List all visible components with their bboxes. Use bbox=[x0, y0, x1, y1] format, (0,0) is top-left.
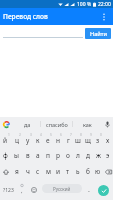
button[interactable]: ж bbox=[93, 147, 103, 163]
staticText: д bbox=[86, 151, 90, 160]
staticText: н bbox=[56, 136, 60, 145]
staticText: е bbox=[46, 136, 50, 145]
staticText: 8 bbox=[80, 133, 82, 137]
button[interactable]: Enter bbox=[94, 180, 113, 200]
staticText: , bbox=[21, 187, 23, 195]
button[interactable]: и bbox=[53, 163, 63, 180]
staticText: э bbox=[106, 151, 110, 160]
button[interactable]: Русский bbox=[42, 184, 82, 193]
staticText: 1 bbox=[8, 133, 10, 137]
button[interactable]: ?123 bbox=[0, 180, 17, 200]
staticText: т bbox=[66, 167, 70, 176]
staticText: г bbox=[67, 136, 70, 145]
staticText: ж bbox=[96, 151, 101, 160]
button[interactable]: б bbox=[83, 163, 93, 180]
staticText: Найти bbox=[90, 30, 107, 37]
button[interactable]: Shift bbox=[0, 163, 11, 180]
button[interactable]: Google search bbox=[0, 117, 13, 131]
staticText: в bbox=[26, 151, 30, 160]
button[interactable]: ь bbox=[73, 163, 83, 180]
button[interactable]: ю bbox=[93, 163, 103, 180]
button[interactable]: More options bbox=[95, 8, 112, 25]
button[interactable]: д bbox=[83, 147, 93, 163]
button[interactable]: м bbox=[43, 163, 53, 180]
button[interactable]: а bbox=[33, 147, 43, 163]
button[interactable]: т bbox=[63, 163, 73, 180]
button[interactable]: я bbox=[11, 163, 22, 180]
staticText: р bbox=[56, 151, 60, 160]
staticText: ?123 bbox=[3, 187, 14, 194]
button[interactable]: к bbox=[33, 131, 43, 147]
button[interactable]: спасибо bbox=[41, 117, 73, 131]
button[interactable]: о bbox=[63, 147, 73, 163]
button[interactable]: . bbox=[83, 180, 94, 200]
staticText: ф bbox=[3, 151, 8, 160]
staticText: ю bbox=[95, 167, 101, 176]
button[interactable]: п bbox=[43, 147, 53, 163]
staticText: ы bbox=[14, 151, 19, 160]
button[interactable]: н bbox=[53, 131, 63, 147]
staticText: Русский bbox=[53, 186, 71, 192]
staticText: ч bbox=[26, 167, 30, 176]
button[interactable]: ф bbox=[0, 147, 11, 163]
button[interactable]: ч bbox=[22, 163, 33, 180]
staticText: и bbox=[56, 167, 61, 176]
staticText: 9 bbox=[90, 133, 92, 137]
staticText: спасибо bbox=[46, 121, 68, 128]
button[interactable]: у bbox=[22, 131, 33, 147]
button[interactable]: щ bbox=[83, 131, 93, 147]
button[interactable]: й bbox=[0, 131, 11, 147]
button[interactable]: х bbox=[103, 131, 113, 147]
button[interactable]: э bbox=[103, 147, 113, 163]
staticText: х bbox=[106, 136, 110, 145]
staticText: л bbox=[76, 151, 80, 160]
staticText: щ bbox=[85, 136, 91, 145]
button[interactable]: с bbox=[33, 163, 43, 180]
button[interactable]: з bbox=[93, 131, 103, 147]
button[interactable]: в bbox=[22, 147, 33, 163]
button[interactable]: ш bbox=[73, 131, 83, 147]
button[interactable]: Emoji bbox=[27, 180, 40, 200]
staticText: я bbox=[15, 167, 19, 176]
button[interactable]: л bbox=[73, 147, 83, 163]
staticText: м bbox=[46, 167, 51, 176]
staticText: Перевод слов bbox=[3, 12, 48, 21]
button[interactable]: е bbox=[43, 131, 53, 147]
staticText: з bbox=[96, 136, 100, 145]
button[interactable]: р bbox=[53, 147, 63, 163]
staticText: как bbox=[83, 121, 92, 128]
staticText: ц bbox=[15, 136, 19, 145]
staticText: . bbox=[88, 185, 90, 195]
staticText: с bbox=[36, 167, 40, 176]
button[interactable] bbox=[3, 37, 83, 55]
staticText: 6 bbox=[60, 133, 62, 137]
staticText: 0 bbox=[100, 133, 102, 137]
button[interactable]: Voice input bbox=[102, 117, 113, 131]
staticText: к bbox=[36, 136, 40, 145]
staticText: б bbox=[86, 167, 90, 176]
staticText: у bbox=[26, 136, 30, 145]
button[interactable]: , bbox=[17, 180, 27, 200]
staticText: 5 bbox=[50, 133, 52, 137]
staticText: п bbox=[46, 151, 50, 160]
button[interactable]: ы bbox=[11, 147, 22, 163]
button[interactable]: г bbox=[63, 131, 73, 147]
staticText: й bbox=[3, 136, 8, 145]
staticText: 4 bbox=[40, 133, 42, 137]
button[interactable]: да bbox=[13, 117, 41, 131]
staticText: 100 % bbox=[77, 1, 92, 8]
staticText: а bbox=[36, 151, 40, 160]
button[interactable]: как bbox=[73, 117, 102, 131]
staticText: ь bbox=[76, 167, 80, 176]
staticText: 22:00 bbox=[98, 1, 111, 8]
staticText: 2 bbox=[19, 133, 21, 137]
staticText: 7 bbox=[70, 133, 72, 137]
staticText: 3 bbox=[30, 133, 32, 137]
staticText: о bbox=[66, 151, 70, 160]
button[interactable]: Backspace bbox=[103, 163, 113, 180]
button[interactable]: Найти bbox=[85, 28, 111, 39]
staticText: ш bbox=[75, 136, 81, 145]
button[interactable]: ц bbox=[11, 131, 22, 147]
staticText: да bbox=[24, 121, 31, 128]
